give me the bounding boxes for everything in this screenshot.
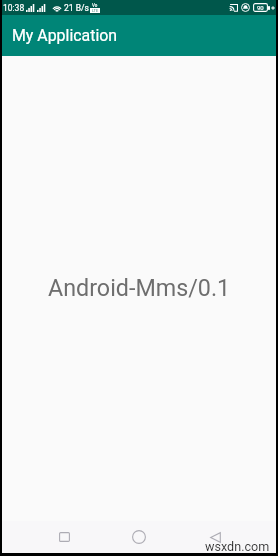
staticText: 21 B/s bbox=[64, 3, 89, 13]
button[interactable]: Home bbox=[121, 521, 156, 553]
staticText: wsxdn.com bbox=[205, 539, 270, 554]
staticText: Vo bbox=[92, 3, 98, 8]
staticText: 90 bbox=[257, 4, 264, 11]
button[interactable]: My Application bbox=[2, 15, 276, 56]
staticText: LTE bbox=[92, 8, 99, 13]
staticText: 10:38 bbox=[3, 3, 25, 13]
button[interactable]: Back bbox=[198, 521, 233, 553]
staticText: My Application bbox=[12, 26, 118, 45]
button[interactable]: Recents bbox=[47, 521, 82, 553]
staticText: Android-Mms/0.1 bbox=[48, 274, 231, 301]
